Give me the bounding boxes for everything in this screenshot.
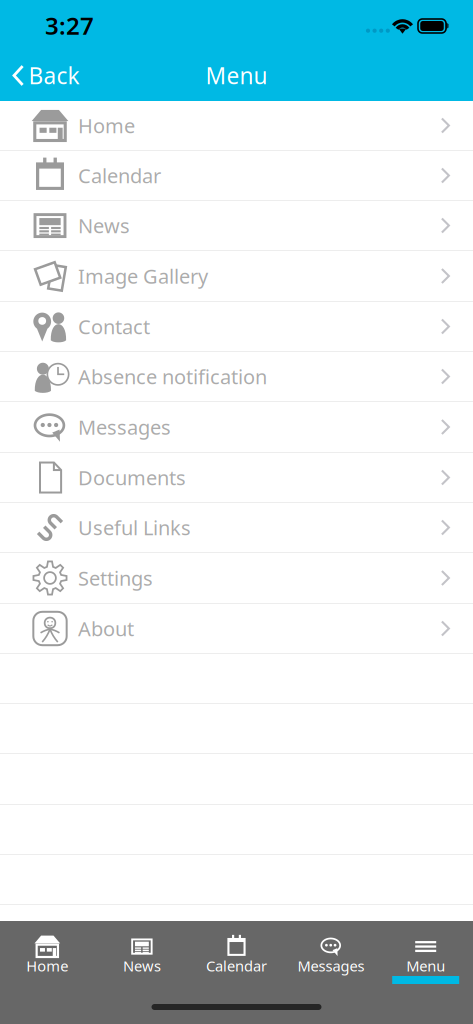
button[interactable]: Home xyxy=(0,921,95,990)
staticText: Back xyxy=(29,60,80,90)
staticText: News xyxy=(123,956,161,975)
staticText: 3:27 xyxy=(45,10,94,41)
staticText: Image Gallery xyxy=(78,263,208,289)
staticText: About xyxy=(78,615,134,642)
staticText: News xyxy=(78,212,130,239)
button[interactable]: About xyxy=(0,604,473,654)
staticText: Calendar xyxy=(206,956,267,975)
button[interactable]: Image Gallery xyxy=(0,251,473,302)
staticText: Settings xyxy=(78,565,153,591)
button[interactable]: Absence notification xyxy=(0,352,473,402)
staticText: Contact xyxy=(78,313,150,340)
staticText: Messages xyxy=(298,956,365,975)
button[interactable]: Documents xyxy=(0,453,473,503)
button[interactable]: News xyxy=(0,201,473,251)
button[interactable]: Useful Links xyxy=(0,503,473,553)
button[interactable]: Calendar xyxy=(189,921,284,990)
button[interactable]: Messages xyxy=(0,402,473,453)
button[interactable]: Calendar xyxy=(0,151,473,201)
button[interactable]: Contact xyxy=(0,302,473,352)
staticText: Calendar xyxy=(78,162,161,189)
button[interactable]: Settings xyxy=(0,553,473,604)
staticText: Absence notification xyxy=(78,363,267,390)
staticText: Messages xyxy=(78,414,171,440)
staticText: Home xyxy=(26,956,68,975)
button[interactable]: Home xyxy=(0,101,473,151)
button[interactable]: Back xyxy=(0,50,80,100)
staticText: Home xyxy=(78,112,135,139)
staticText: Documents xyxy=(78,464,186,491)
button[interactable]: Messages xyxy=(284,921,378,990)
button[interactable]: Menu xyxy=(378,921,473,990)
staticText: Useful Links xyxy=(78,514,191,541)
button[interactable]: News xyxy=(95,921,189,990)
staticText: Menu xyxy=(205,60,267,90)
staticText: Menu xyxy=(406,956,445,975)
